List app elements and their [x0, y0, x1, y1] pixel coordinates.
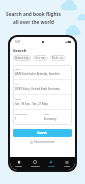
- staticText: Search: [37, 131, 48, 135]
- button[interactable]: One way: [33, 55, 48, 61]
- staticText: all over the world: [13, 19, 54, 25]
- button[interactable]: To: [13, 80, 72, 94]
- staticText: Explore: [31, 165, 40, 168]
- button[interactable]: Class: [42, 110, 72, 124]
- staticText: Home: [15, 165, 22, 168]
- button[interactable]: Home: [10, 158, 27, 170]
- staticText: 1: [15, 117, 17, 121]
- staticText: Sat, 18 Sep - Sat, 21 May: [15, 102, 48, 106]
- button[interactable]: Return trip: [13, 55, 31, 61]
- button[interactable]: From: [13, 65, 72, 79]
- staticText: Economy: [44, 117, 57, 121]
- staticText: Return trip: [15, 56, 29, 60]
- button[interactable]: Multi-city: [50, 55, 66, 61]
- staticText: Search: [13, 48, 27, 53]
- button[interactable]: Passengers: [13, 110, 42, 124]
- staticText: ARN Stockholm Arlanda, Sweden: [15, 72, 60, 76]
- staticText: DXB Dubai, United Arab Emirates: [15, 87, 60, 91]
- staticText: 9:41: [15, 40, 21, 44]
- staticText: One way: [35, 56, 46, 60]
- button[interactable]: More: [59, 158, 75, 170]
- button[interactable]: Recent searches: [13, 140, 72, 144]
- staticText: More: [64, 165, 70, 168]
- button[interactable]: Travel: [43, 158, 59, 170]
- staticText: Travel: [48, 165, 55, 168]
- staticText: Dates: [15, 98, 22, 101]
- staticText: From: [15, 68, 21, 71]
- staticText: Recent searches: [34, 140, 55, 144]
- staticText: Search and book flights: [6, 11, 61, 17]
- staticText: Class: [44, 113, 50, 116]
- staticText: Multi-city: [52, 56, 64, 60]
- staticText: Passengers: [15, 113, 28, 116]
- button[interactable]: Search: [13, 129, 72, 137]
- staticText: To: [15, 83, 18, 86]
- button[interactable]: Dates: [13, 95, 72, 109]
- button[interactable]: Explore: [27, 158, 43, 170]
